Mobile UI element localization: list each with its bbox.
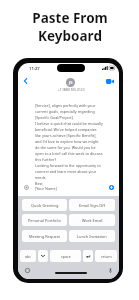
staticText: Paste From	[32, 9, 108, 27]
button[interactable]: Send	[107, 183, 116, 192]
button[interactable]: Lunch Invitation	[69, 230, 115, 242]
staticText: +1 (888) 555-0123	[58, 88, 85, 92]
button[interactable]: Back	[20, 75, 31, 86]
button[interactable]: Meeting Request	[22, 230, 67, 242]
button[interactable]: Quick Greeting	[22, 199, 67, 211]
button[interactable]: Dictation	[106, 266, 115, 275]
staticText: return	[101, 254, 112, 259]
staticText: Quick Greeting	[31, 203, 59, 208]
staticText: Personal Portfolio	[28, 218, 61, 223]
button[interactable]: Emoji keyboard	[23, 266, 32, 275]
button[interactable]	[83, 250, 93, 262]
staticText: space	[61, 254, 71, 259]
button[interactable]: space	[50, 250, 81, 262]
staticText: [Your Name]	[35, 186, 57, 191]
staticText: Meeting Request	[29, 234, 61, 239]
staticText: Best,	[35, 181, 44, 186]
staticText: Looking forward to the opportunity to co…	[35, 163, 103, 180]
staticText: Email Sign-Off	[79, 203, 105, 208]
staticText: Keyboard	[38, 27, 102, 45]
button[interactable]: Video call	[104, 76, 115, 87]
staticText: I believe a quick chat could be mutually…	[35, 121, 103, 162]
button[interactable]: Email Sign-Off	[69, 199, 115, 211]
staticText: 11:27	[29, 66, 40, 72]
staticText: Work Email	[82, 218, 103, 223]
button[interactable]: abc	[20, 250, 36, 262]
staticText: abc	[25, 254, 31, 259]
staticText: [Service], aligns perfectly with your cu…	[35, 103, 103, 120]
button[interactable]: return	[95, 250, 117, 262]
staticText: Lunch Invitation	[77, 234, 107, 239]
button[interactable]: Add attachment	[22, 183, 31, 192]
button[interactable]	[38, 250, 48, 262]
staticText: JS	[69, 80, 73, 85]
button[interactable]: Work Email	[69, 214, 115, 226]
button[interactable]: Personal Portfolio	[22, 214, 67, 226]
